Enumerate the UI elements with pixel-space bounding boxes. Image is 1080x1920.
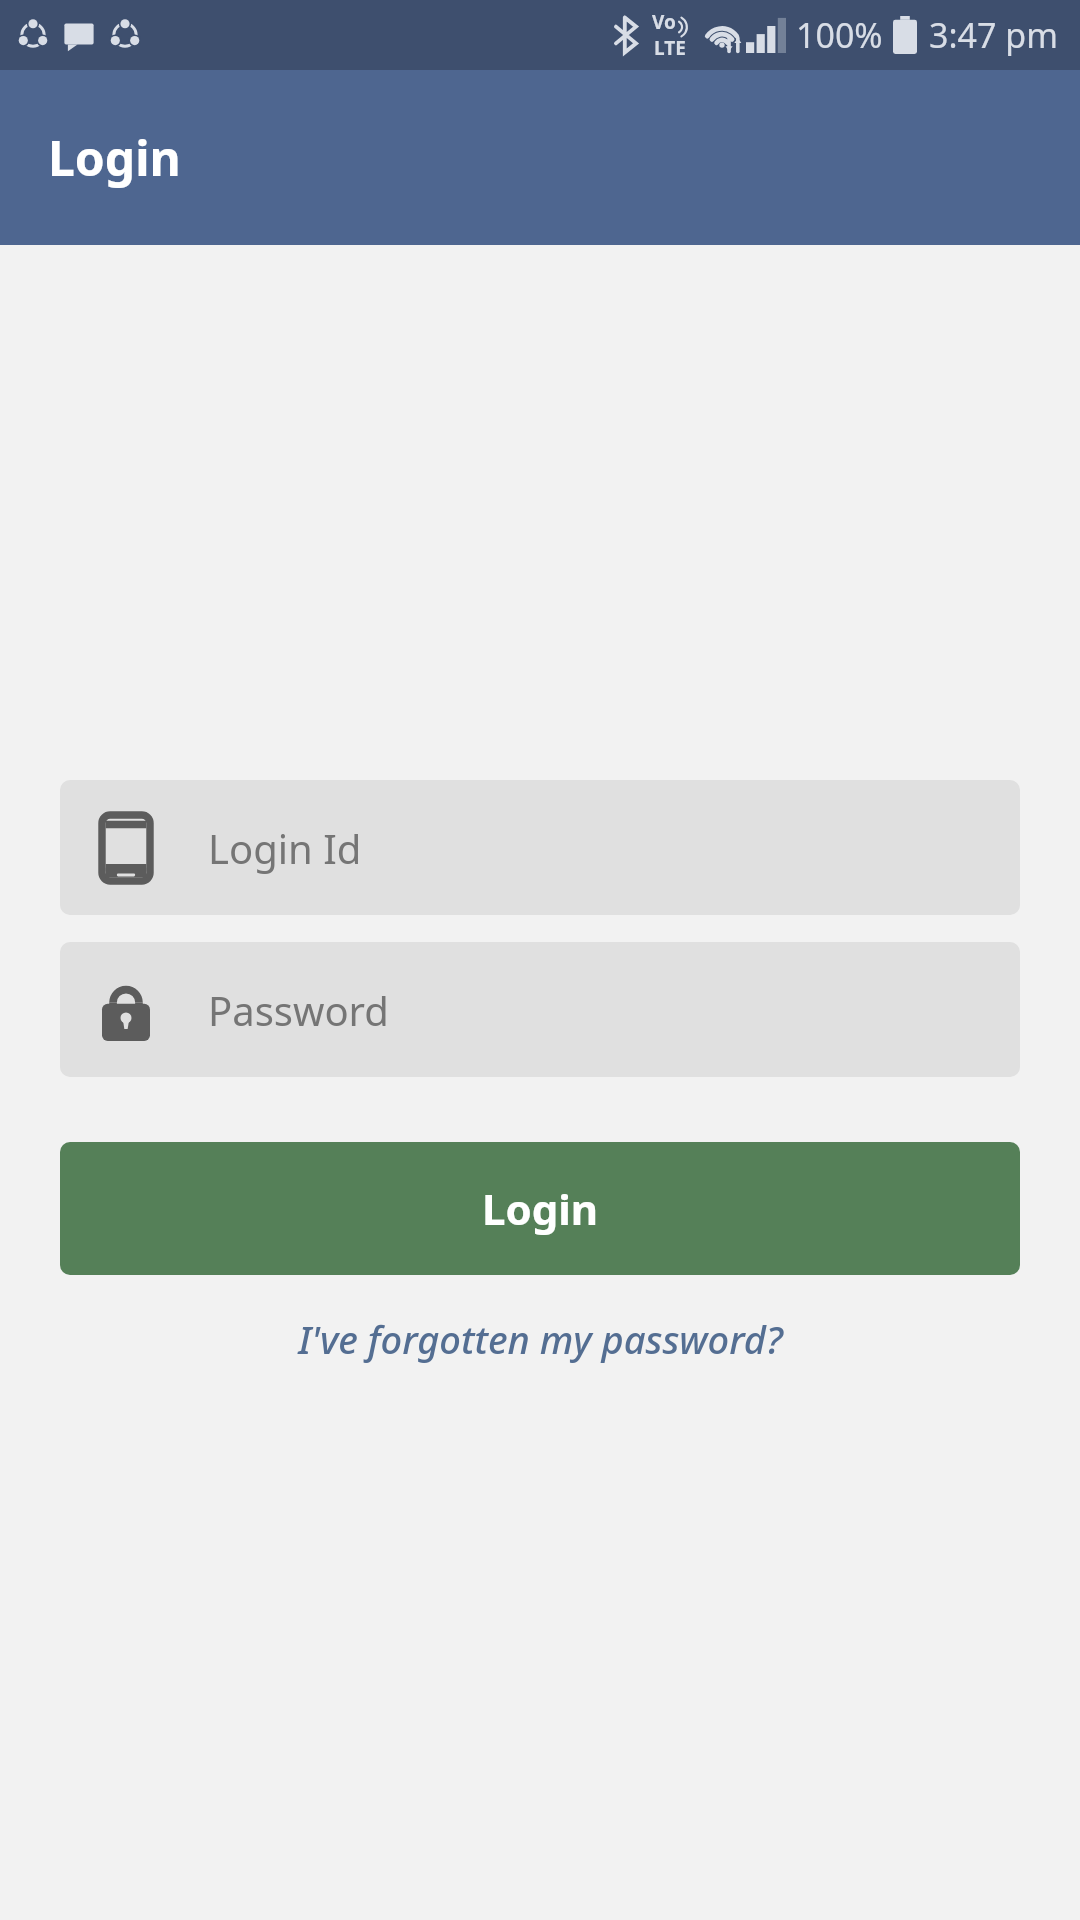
staticText: 100% (796, 12, 883, 58)
button[interactable]: Password (60, 942, 1020, 1077)
staticText: Login (48, 125, 181, 190)
other: Login Id (102, 815, 150, 881)
other: Password (102, 979, 150, 1041)
staticText: Password (208, 983, 389, 1037)
staticText: LTE (654, 35, 686, 61)
staticText: 3:47 pm (929, 12, 1058, 58)
staticText: Vo (652, 9, 676, 35)
staticText: Login (482, 1180, 599, 1237)
staticText: Login Id (208, 821, 362, 875)
staticText: I've forgotten my password? (298, 1313, 783, 1365)
button[interactable]: Login (60, 1142, 1020, 1275)
button[interactable]: I've forgotten my password? (60, 1307, 1020, 1371)
button[interactable]: Login Id (60, 780, 1020, 915)
